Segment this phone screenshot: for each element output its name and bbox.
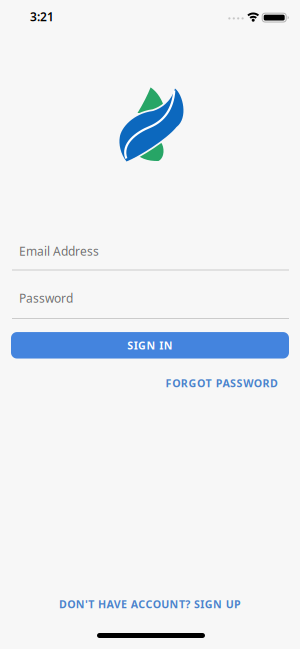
staticText: SIGN IN xyxy=(127,338,173,352)
staticText: FORGOT PASSWORD xyxy=(166,376,278,390)
staticText: 3:21 xyxy=(30,8,54,24)
staticText: DON'T HAVE ACCOUNT? SIGN UP xyxy=(59,597,241,611)
staticText: Password xyxy=(19,290,73,306)
staticText: Email Address xyxy=(19,243,99,259)
button[interactable]: FORGOT PASSWORD xyxy=(0,376,300,390)
button[interactable]: DON'T HAVE ACCOUNT? SIGN UP xyxy=(59,597,241,611)
button[interactable]: Password xyxy=(0,290,300,319)
button[interactable]: Email Address xyxy=(0,243,300,270)
button[interactable]: SIGN IN xyxy=(11,332,289,359)
